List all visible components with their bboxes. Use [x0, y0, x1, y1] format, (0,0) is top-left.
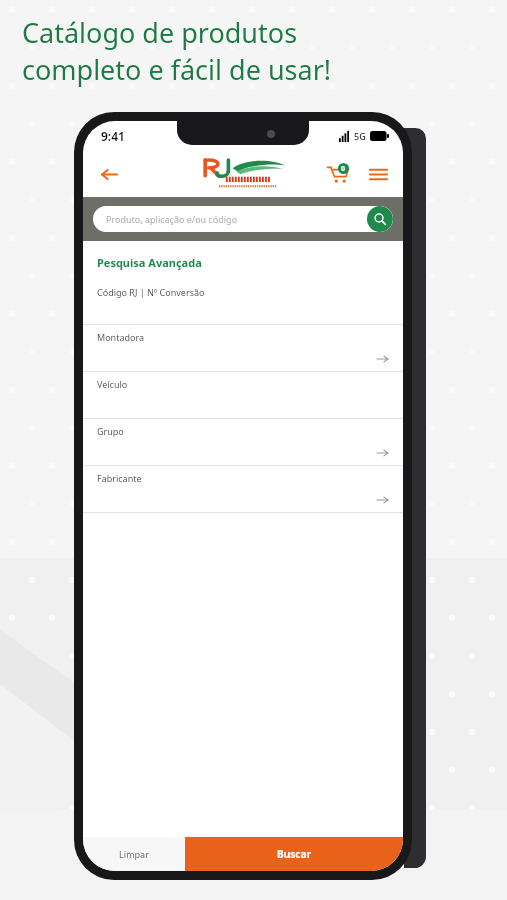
button[interactable]: Buscar — [367, 206, 393, 232]
button[interactable]: Buscar — [185, 837, 403, 871]
staticText: Veículo — [97, 378, 128, 390]
button[interactable]: Grupo — [83, 419, 403, 466]
staticText: Limpar — [119, 848, 149, 860]
staticText: Catálogo de produtos — [22, 14, 298, 51]
staticText: Pesquisa Avançada — [97, 255, 202, 270]
staticText: Fabricante — [97, 472, 142, 484]
staticText: Grupo — [97, 425, 124, 437]
button[interactable]: Veículo — [83, 372, 403, 419]
staticText: Montadora — [97, 331, 145, 343]
staticText: Buscar — [277, 847, 311, 861]
button[interactable]: Montadora — [83, 325, 403, 372]
staticText: Produto, aplicação e/ou código — [106, 213, 367, 225]
button[interactable]: Limpar — [83, 837, 185, 871]
staticText: 9:41 — [101, 128, 125, 144]
staticText: completo e fácil de usar! — [22, 51, 332, 88]
button[interactable]: Menu — [363, 159, 393, 189]
button[interactable]: Carrinho — [323, 159, 353, 189]
button[interactable]: Produto, aplicação e/ou código — [93, 206, 393, 232]
button[interactable]: Código RJ | Nº Conversão — [97, 286, 205, 298]
staticText: 5G — [354, 130, 366, 142]
button[interactable]: Voltar — [91, 157, 125, 191]
staticText: 0 — [341, 164, 346, 174]
button[interactable]: Fabricante — [83, 466, 403, 513]
